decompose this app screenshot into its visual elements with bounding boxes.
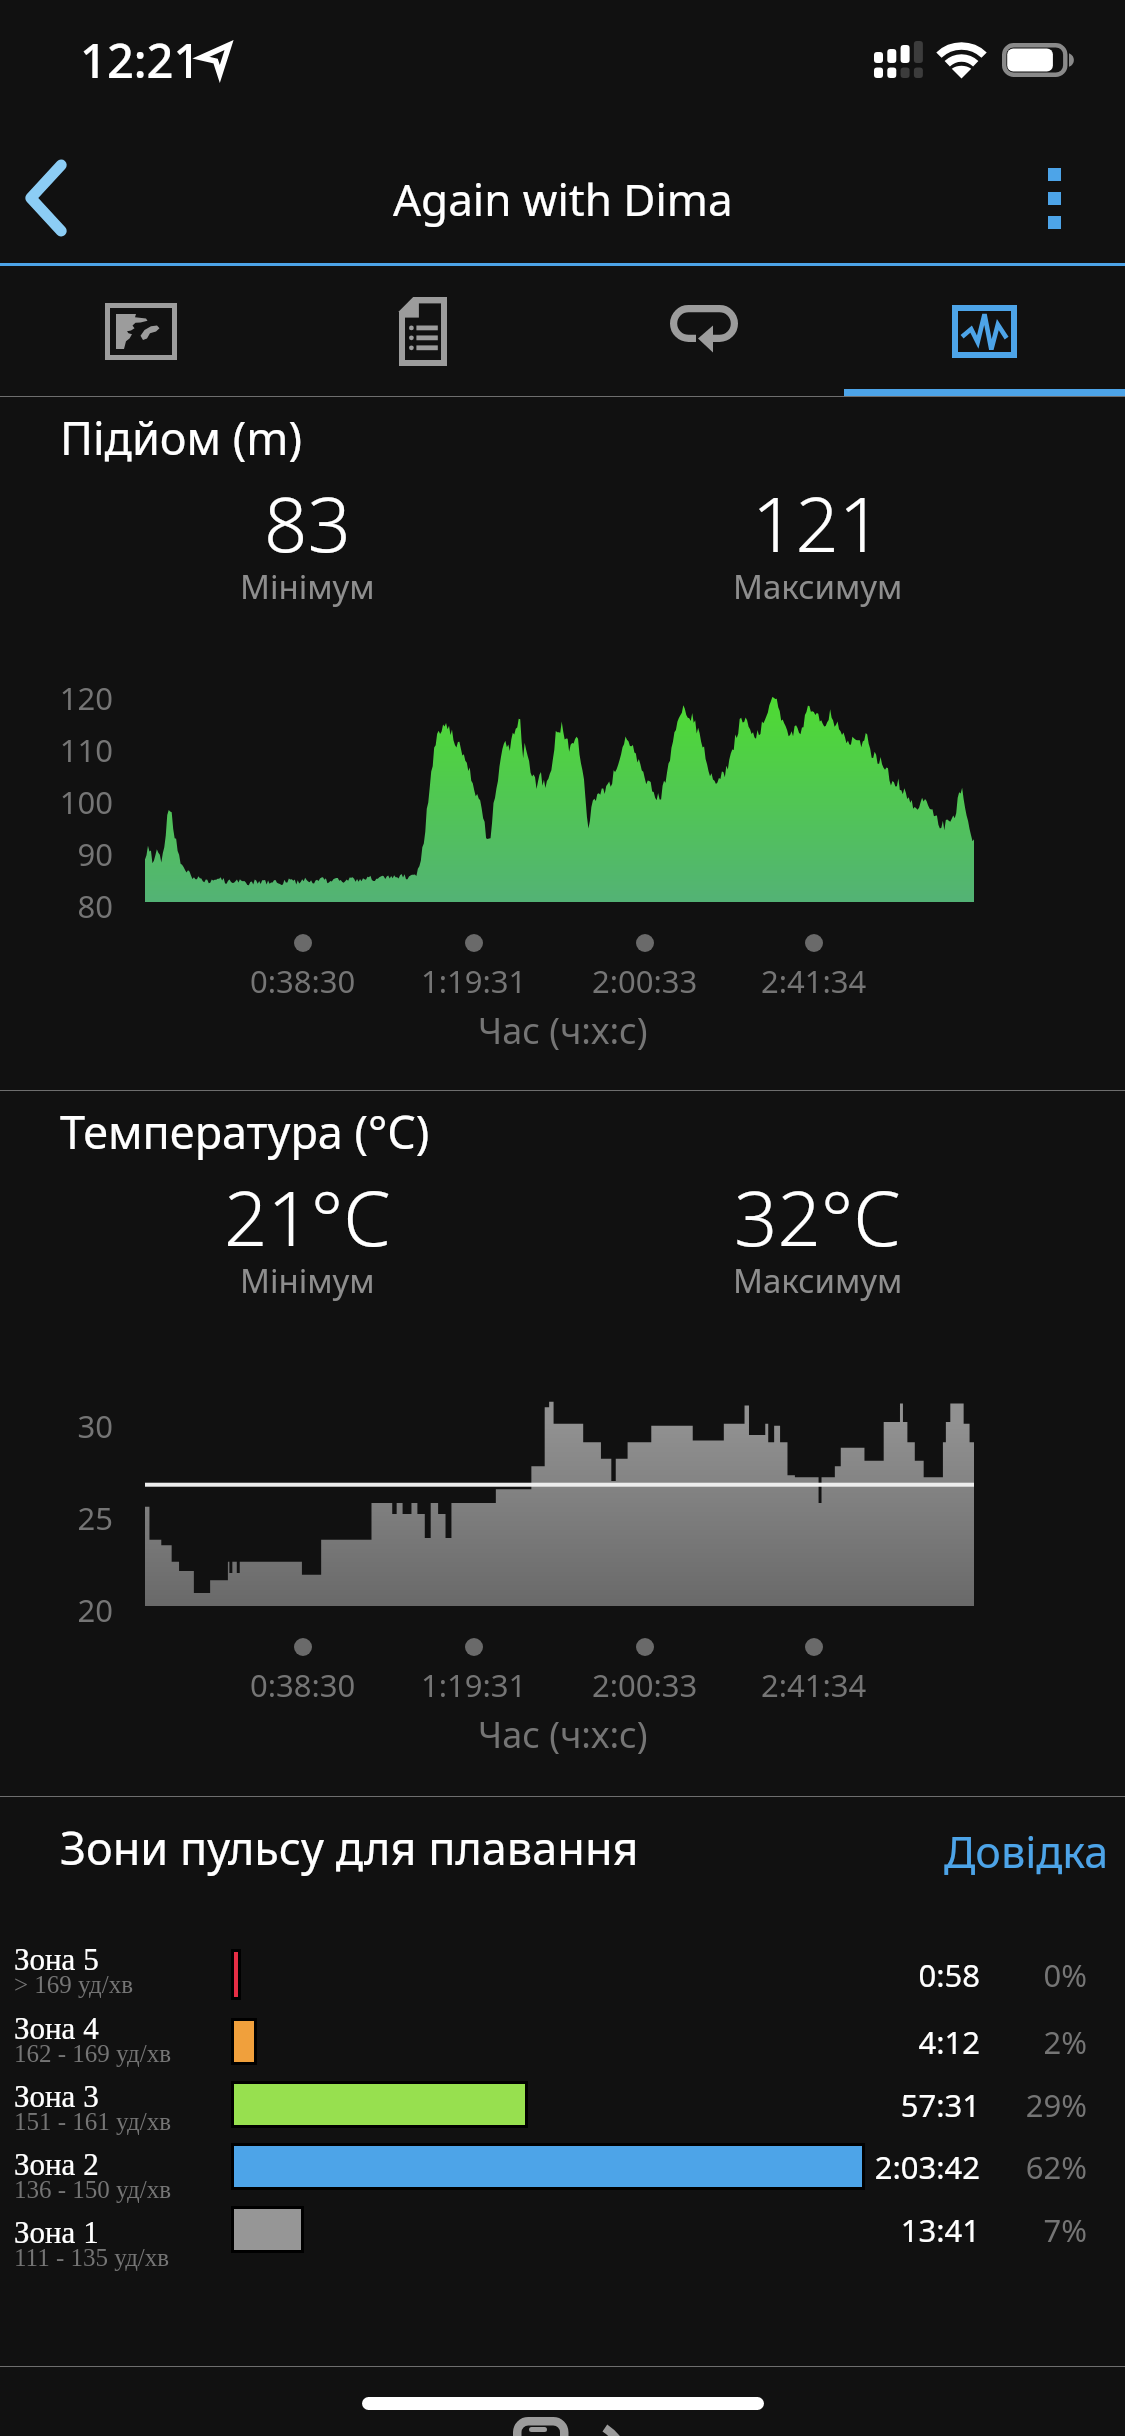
staticText: Час (ч:х:с) — [478, 1006, 648, 1055]
staticText: Зона 3 — [14, 2079, 99, 2113]
button[interactable]: Зона 3 — [0, 2073, 1125, 2136]
button[interactable]: Зона 5 — [0, 1941, 1125, 2004]
button[interactable]: More options — [1025, 132, 1125, 263]
staticText: Час (ч:х:с) — [478, 1710, 648, 1759]
staticText: Зона 4 — [14, 2011, 99, 2045]
staticText: 121 — [752, 471, 883, 575]
button[interactable]: Details — [282, 266, 563, 396]
staticText: 4:12 — [790, 2021, 980, 2063]
staticText: 2:00:33 — [592, 1664, 698, 1706]
staticText: 29% — [897, 2084, 1087, 2126]
staticText: Зона 2 — [14, 2147, 99, 2181]
staticText: Підйом (m) — [60, 407, 302, 468]
staticText: 0:38:30 — [250, 960, 356, 1002]
staticText: 62% — [897, 2146, 1087, 2188]
staticText: 120 — [59, 677, 113, 719]
staticText: Зона 1 — [14, 2215, 99, 2249]
staticText: Довідка — [944, 1822, 1109, 1881]
staticText: 1:19:31 — [421, 1664, 527, 1706]
staticText: 110 — [59, 729, 113, 771]
staticText: 1:19:31 — [421, 960, 527, 1002]
staticText: Again with Dima — [393, 169, 733, 229]
staticText: 21°C — [224, 1165, 391, 1269]
staticText: 111 - 135 уд/хв — [14, 2244, 170, 2272]
staticText: 83 — [264, 471, 351, 575]
button[interactable]: Charts — [844, 266, 1125, 396]
staticText: 151 - 161 уд/хв — [14, 2108, 171, 2136]
staticText: 25 — [77, 1497, 113, 1539]
button[interactable]: Довідка — [934, 1816, 1119, 1887]
staticText: Температура (°C) — [60, 1101, 430, 1162]
staticText: 0:58 — [790, 1954, 980, 1996]
staticText: 7% — [897, 2209, 1087, 2251]
staticText: 2% — [897, 2021, 1087, 2063]
staticText: 0:38:30 — [250, 1664, 356, 1706]
staticText: 12:21 — [80, 28, 201, 92]
staticText: > 169 уд/хв — [14, 1971, 133, 1999]
staticText: 136 - 150 уд/хв — [14, 2176, 171, 2204]
staticText: Максимум — [733, 564, 903, 609]
staticText: 32°C — [734, 1165, 901, 1269]
staticText: 2:41:34 — [761, 1664, 867, 1706]
staticText: 162 - 169 уд/хв — [14, 2040, 171, 2068]
staticText: 2:03:42 — [790, 2146, 980, 2188]
staticText: 30 — [77, 1405, 113, 1447]
staticText: Мінімум — [240, 1258, 375, 1303]
staticText: 20 — [77, 1589, 113, 1631]
button[interactable]: Back — [0, 132, 110, 263]
staticText: 80 — [77, 885, 113, 927]
staticText: Зони пульсу для плавання — [60, 1817, 639, 1878]
staticText: 57:31 — [790, 2084, 980, 2126]
staticText: Зона 5 — [14, 1942, 99, 1976]
button[interactable]: Зона 1 — [0, 2198, 1125, 2261]
button[interactable]: Laps — [563, 266, 844, 396]
staticText: 13:41 — [790, 2209, 980, 2251]
staticText: 100 — [59, 781, 113, 823]
staticText: Мінімум — [240, 564, 375, 609]
staticText: 2:00:33 — [592, 960, 698, 1002]
staticText: 0% — [897, 1954, 1087, 1996]
staticText: 90 — [77, 833, 113, 875]
button[interactable]: Map — [0, 266, 282, 396]
button[interactable]: Зона 2 — [0, 2135, 1125, 2198]
staticText: Максимум — [733, 1258, 903, 1303]
staticText: 2:41:34 — [761, 960, 867, 1002]
button[interactable]: Зона 4 — [0, 2010, 1125, 2073]
